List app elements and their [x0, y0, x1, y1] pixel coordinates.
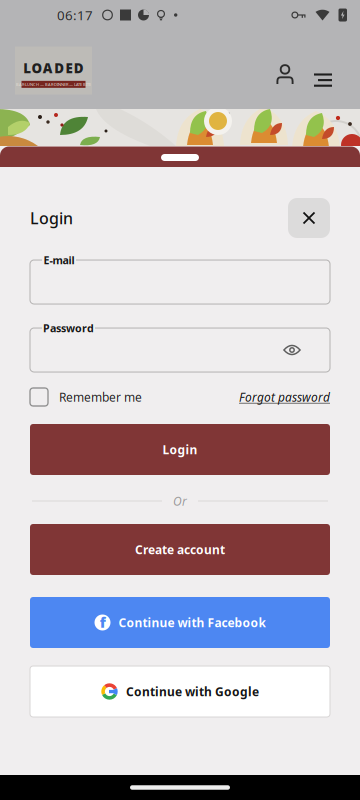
button[interactable]: Close [288, 198, 330, 238]
button[interactable]: Continue with Google [30, 666, 330, 717]
staticText: LOADED [23, 59, 84, 77]
button[interactable]: Login [30, 424, 330, 475]
button[interactable]: Forgot password [239, 386, 330, 408]
staticText: E-mail [43, 253, 74, 267]
staticText: Create account [135, 541, 225, 557]
staticText: Forgot password [239, 389, 330, 405]
staticText: BAR·LUNCH — BAR·DINNER — LATE BITE [16, 82, 91, 87]
button[interactable]: Account [270, 49, 300, 89]
staticText: Continue with Google [126, 683, 259, 699]
staticText: Login [30, 207, 73, 229]
button[interactable]: Remember me [30, 386, 142, 408]
button[interactable]: Menu [308, 49, 338, 89]
staticText: Login [162, 441, 197, 457]
staticText: Password [43, 321, 94, 335]
staticText: Continue with Facebook [118, 614, 265, 630]
button[interactable]: f [30, 597, 330, 648]
button[interactable]: Create account [30, 524, 330, 575]
button[interactable]: Show password [283, 343, 301, 356]
staticText: Remember me [59, 389, 142, 405]
staticText: Or [173, 493, 187, 509]
staticText: f [100, 612, 106, 632]
staticText: 06:17 [57, 6, 93, 24]
